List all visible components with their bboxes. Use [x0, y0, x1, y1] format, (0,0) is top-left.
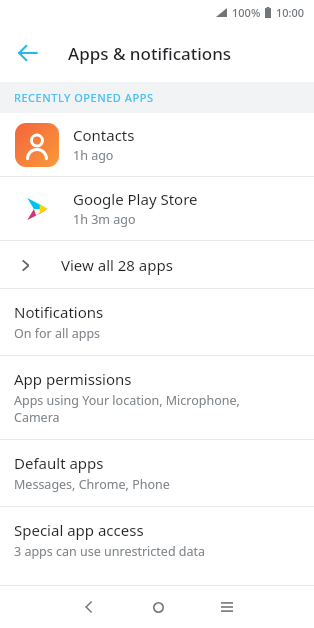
staticText: Messages, Chrome, Phone: [14, 476, 170, 493]
staticText: Contacts: [73, 125, 135, 145]
button[interactable]: Recent apps: [210, 590, 244, 624]
button[interactable]: View all 28 apps: [0, 241, 314, 288]
staticText: Default apps: [14, 453, 104, 473]
staticText: Notifications: [14, 302, 104, 322]
button[interactable]: Contacts: [0, 113, 314, 176]
button[interactable]: Back: [12, 37, 44, 69]
button[interactable]: App permissions: [0, 356, 314, 439]
staticText: Google Play Store: [73, 189, 198, 209]
staticText: App permissions: [14, 369, 132, 389]
button[interactable]: Back: [72, 590, 106, 624]
button[interactable]: Special app access: [0, 507, 314, 573]
staticText: On for all apps: [14, 325, 101, 342]
staticText: Camera: [14, 409, 60, 426]
staticText: RECENTLY OPENED APPS: [14, 90, 154, 105]
staticText: Apps & notifications: [68, 42, 232, 65]
button[interactable]: Home: [141, 590, 175, 624]
staticText: 1h 3m ago: [73, 211, 136, 228]
button[interactable]: Google Play Store: [0, 177, 314, 240]
staticText: 3 apps can use unrestricted data: [14, 543, 206, 560]
button[interactable]: Default apps: [0, 440, 314, 506]
staticText: Apps using Your location, Microphone,: [14, 392, 240, 409]
staticText: Special app access: [14, 520, 144, 540]
staticText: 1h ago: [73, 147, 114, 164]
staticText: 100%: [232, 5, 261, 20]
staticText: View all 28 apps: [61, 255, 173, 275]
button[interactable]: Notifications: [0, 289, 314, 355]
staticText: 10:00: [276, 5, 305, 20]
